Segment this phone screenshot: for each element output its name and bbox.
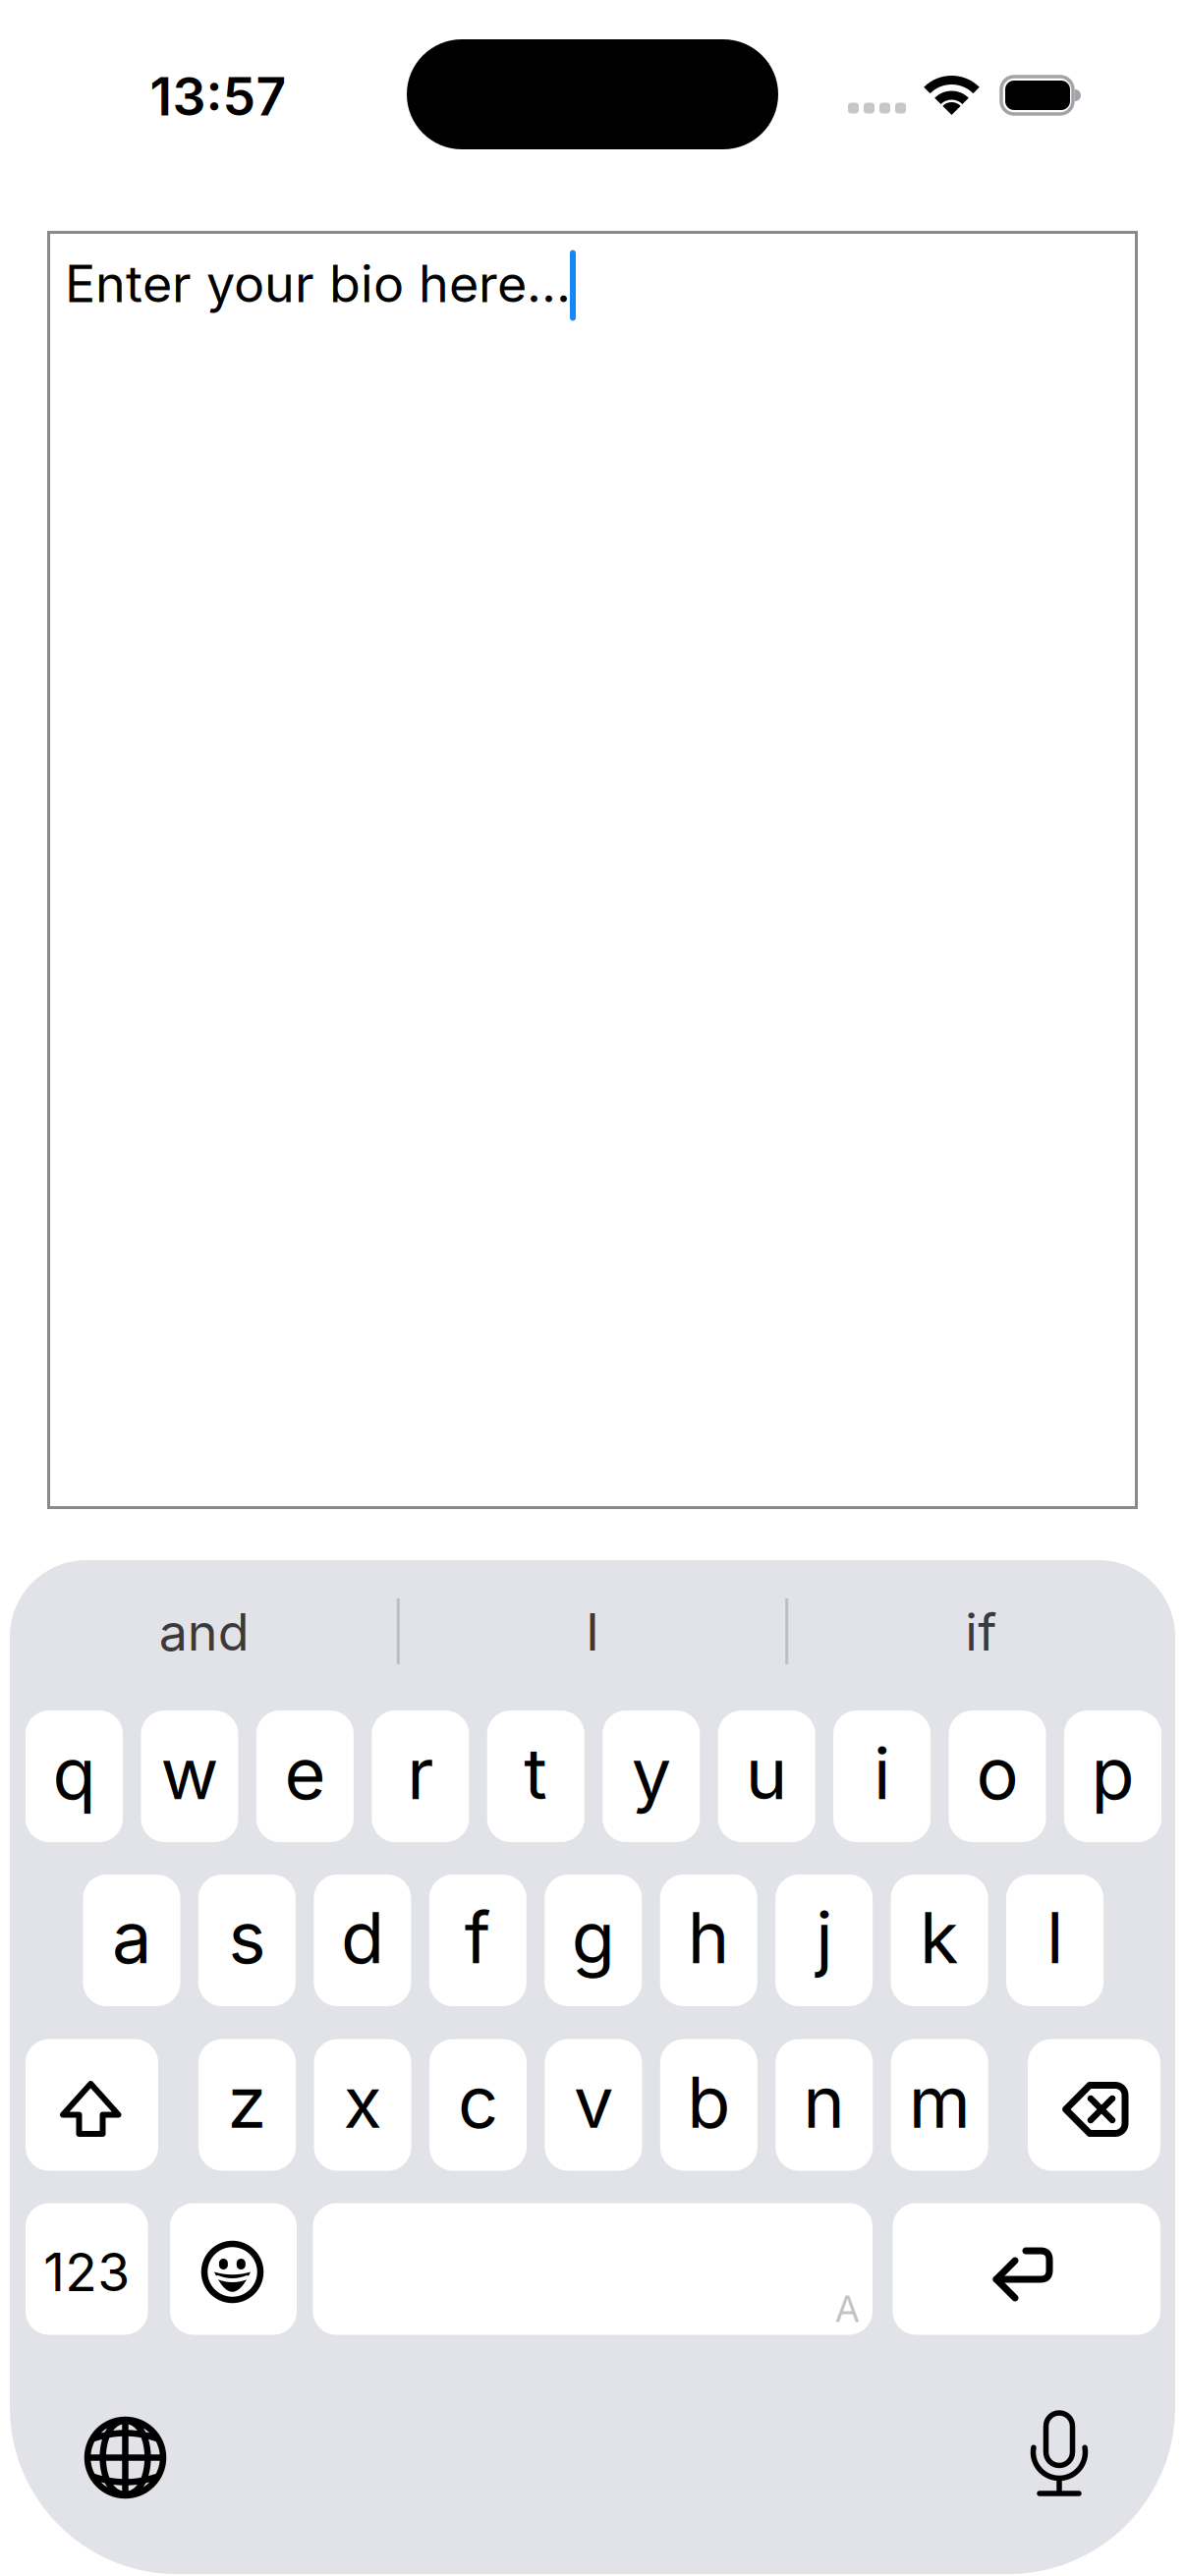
- button[interactable]: z: [199, 2039, 296, 2171]
- button[interactable]: c: [429, 2039, 527, 2171]
- staticText: y: [632, 1732, 671, 1815]
- button[interactable]: l: [1006, 1875, 1103, 2006]
- staticText: f: [465, 1896, 491, 1979]
- staticText: d: [341, 1896, 384, 1979]
- staticText: c: [458, 2060, 498, 2144]
- button[interactable]: g: [545, 1875, 642, 2006]
- button[interactable]: h: [660, 1875, 757, 2006]
- button[interactable]: u: [718, 1710, 815, 1842]
- button[interactable]: a: [83, 1875, 180, 2006]
- button[interactable]: Dictation: [990, 2385, 1128, 2523]
- button[interactable]: Return: [893, 2203, 1160, 2335]
- button[interactable]: 123: [26, 2203, 148, 2335]
- staticText: q: [53, 1732, 96, 1815]
- staticText: u: [745, 1732, 788, 1815]
- button[interactable]: i: [833, 1710, 931, 1842]
- staticText: r: [407, 1732, 434, 1815]
- staticText: and: [159, 1602, 249, 1662]
- button[interactable]: f: [429, 1875, 526, 2006]
- staticText: m: [909, 2060, 971, 2144]
- staticText: I: [586, 1602, 599, 1662]
- staticText: 123: [44, 2241, 130, 2303]
- button[interactable]: q: [26, 1710, 123, 1842]
- button[interactable]: y: [603, 1710, 700, 1842]
- staticText: o: [976, 1732, 1018, 1815]
- button[interactable]: Bio text editor: [47, 231, 1138, 1509]
- button[interactable]: n: [776, 2039, 873, 2171]
- button[interactable]: v: [545, 2039, 642, 2171]
- staticText: s: [228, 1896, 266, 1979]
- staticText: h: [688, 1896, 730, 1979]
- staticText: x: [343, 2060, 382, 2144]
- staticText: a: [112, 1896, 151, 1979]
- button[interactable]: e: [256, 1710, 354, 1842]
- button[interactable]: w: [141, 1710, 238, 1842]
- button[interactable]: o: [949, 1710, 1046, 1842]
- staticText: A: [835, 2287, 860, 2330]
- button[interactable]: d: [314, 1875, 411, 2006]
- button[interactable]: k: [891, 1875, 988, 2006]
- button[interactable]: I: [403, 1568, 782, 1696]
- staticText: n: [803, 2060, 845, 2144]
- button[interactable]: j: [775, 1875, 873, 2006]
- staticText: w: [161, 1732, 219, 1815]
- button[interactable]: s: [198, 1875, 296, 2006]
- button[interactable]: Delete: [1028, 2039, 1160, 2171]
- button[interactable]: p: [1064, 1710, 1161, 1842]
- staticText: b: [687, 2060, 730, 2144]
- staticText: l: [1046, 1896, 1063, 1979]
- button[interactable]: Space: [313, 2203, 873, 2335]
- staticText: Enter your bio here...: [65, 253, 571, 314]
- button[interactable]: r: [372, 1710, 469, 1842]
- button[interactable]: x: [314, 2039, 411, 2171]
- staticText: i: [874, 1732, 890, 1815]
- button[interactable]: Next keyboard: [56, 2389, 194, 2526]
- button[interactable]: t: [487, 1710, 584, 1842]
- staticText: e: [284, 1732, 326, 1815]
- staticText: if: [965, 1602, 997, 1662]
- button[interactable]: Emoji: [170, 2203, 297, 2335]
- staticText: j: [816, 1896, 832, 1979]
- button[interactable]: m: [891, 2039, 988, 2171]
- staticText: k: [920, 1896, 959, 1979]
- staticText: 13:57: [150, 65, 286, 127]
- staticText: t: [524, 1732, 548, 1815]
- staticText: g: [572, 1896, 615, 1979]
- button[interactable]: and: [15, 1568, 393, 1696]
- button[interactable]: b: [660, 2039, 757, 2171]
- button[interactable]: Shift: [26, 2039, 158, 2171]
- button[interactable]: if: [792, 1568, 1170, 1696]
- staticText: z: [228, 2060, 267, 2144]
- staticText: p: [1091, 1732, 1134, 1815]
- staticText: v: [574, 2060, 613, 2144]
